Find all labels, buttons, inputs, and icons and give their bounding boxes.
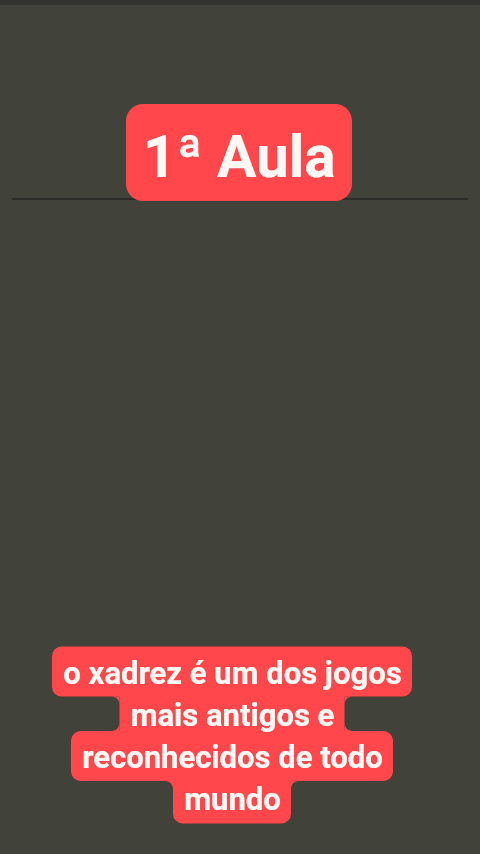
button[interactable]: 1ª Aula [126,104,352,201]
staticText: 1ª Aula [143,123,336,191]
button[interactable]: o xadrez é um dos jogos mais antigos e r… [2,655,462,818]
other: Divider [12,198,468,200]
staticText: o xadrez é um dos jogos mais antigos e r… [63,655,402,818]
